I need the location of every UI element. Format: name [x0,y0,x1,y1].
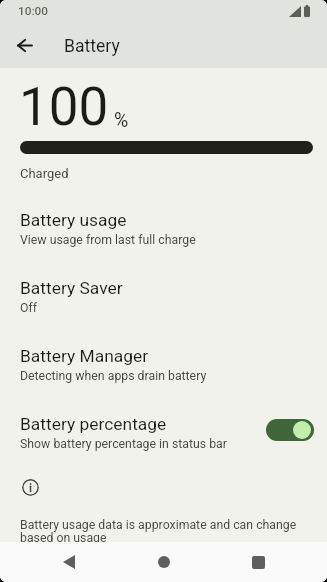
staticText: Battery percentage [20,414,167,434]
button[interactable]: Navigate up [8,29,40,61]
button[interactable]: Home [143,542,185,582]
staticText: Off [20,301,38,315]
button[interactable]: Battery percentage [0,398,327,466]
staticText: Charged [20,166,69,181]
button[interactable]: Back [48,542,90,582]
button[interactable]: Battery Saver [0,262,327,330]
staticText: 10:00 [18,4,48,18]
staticText: Battery [64,36,120,57]
staticText: Detecting when apps drain battery [20,369,207,383]
button[interactable]: Battery usage [0,194,327,262]
staticText: Show battery percentage in status bar [20,437,227,451]
button[interactable]: Information [22,479,39,496]
staticText: Battery usage data is approximate and ca… [20,518,309,542]
staticText: Battery Saver [20,278,123,298]
staticText: View usage from last full charge [20,233,196,247]
staticText: Battery usage [20,210,127,230]
staticText: 100 [19,76,109,138]
button[interactable]: Battery Manager [0,330,327,398]
button[interactable]: Battery percentage toggle [266,419,314,441]
button[interactable]: Recent apps [237,542,279,582]
staticText: % [114,109,129,132]
staticText: Battery Manager [20,346,149,366]
